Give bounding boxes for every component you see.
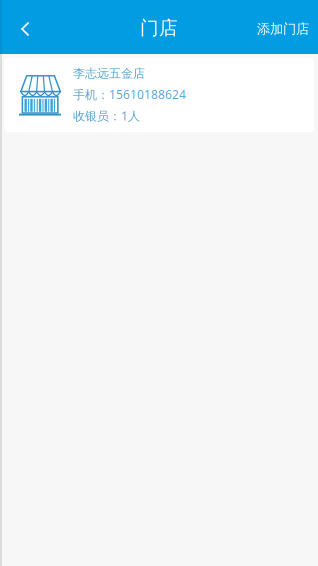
button[interactable]: 李志远五金店 [4, 58, 314, 132]
staticText: 手机：15610188624 [73, 86, 186, 102]
staticText: 李志远五金店 [73, 66, 145, 81]
staticText: 收银员：1人 [73, 108, 140, 124]
staticText: 门店 [140, 16, 178, 39]
button[interactable]: 添加门店 [257, 0, 318, 54]
button[interactable]: 返回 [0, 0, 30, 54]
staticText: 添加门店 [257, 21, 309, 37]
